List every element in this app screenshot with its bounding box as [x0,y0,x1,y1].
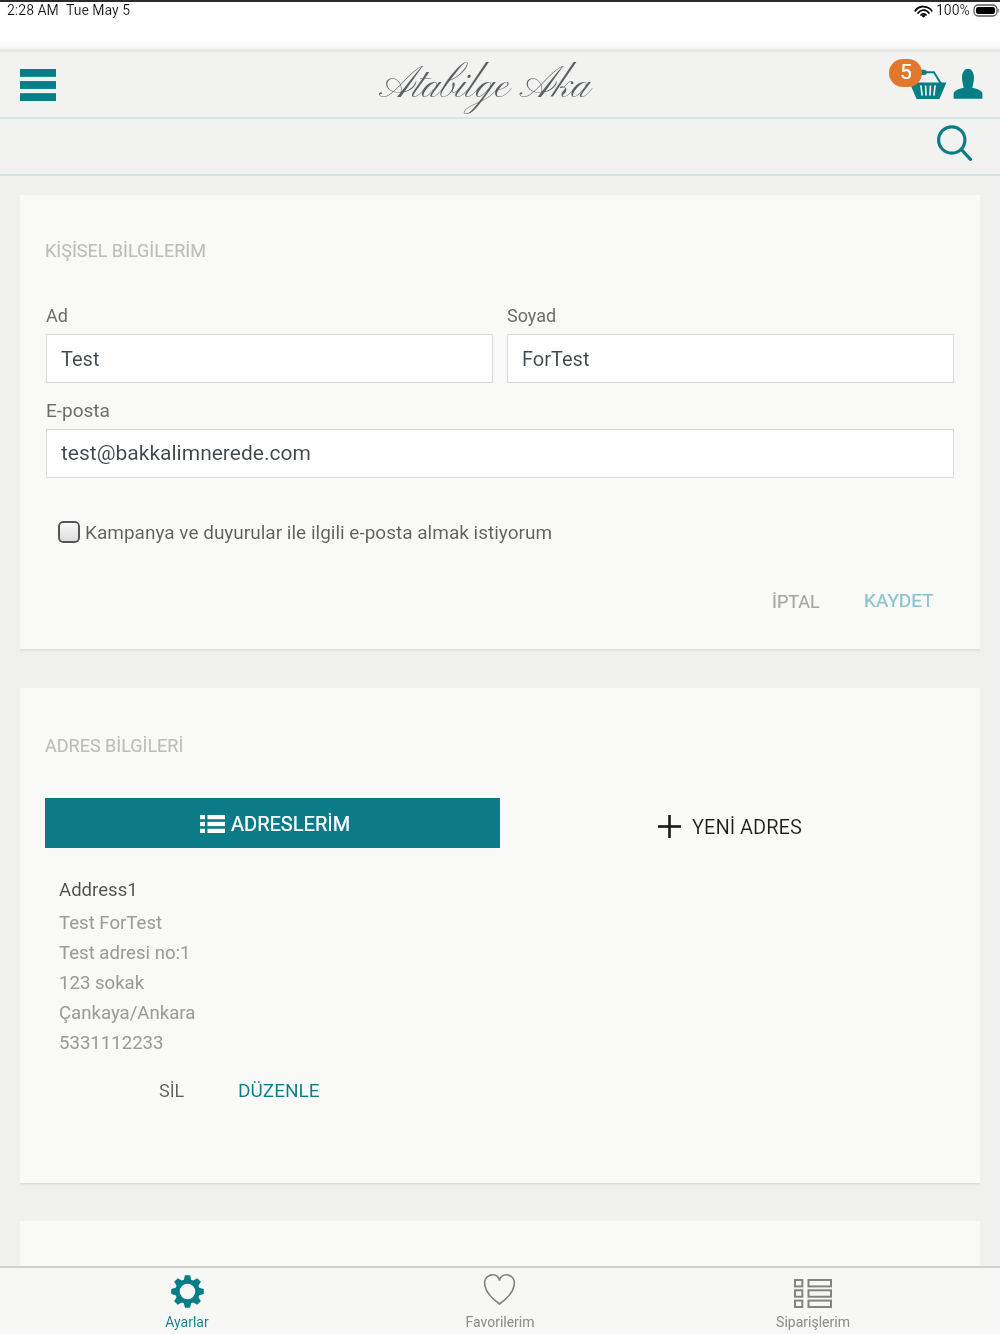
button[interactable]: Test [46,334,493,383]
staticText: 5331112233 [59,1032,164,1054]
staticText: 5 [900,60,912,85]
button[interactable]: SİL [146,1070,198,1111]
button[interactable]: Favorilerim [343,1268,656,1334]
staticText: E-posta [46,399,110,421]
staticText: ADRES BİLGİLERİ [45,735,184,756]
staticText: ForTest [522,347,590,370]
staticText: KAYDET [864,589,934,611]
staticText: DÜZENLE [238,1079,320,1101]
staticText: Test [61,347,100,370]
button[interactable]: KAYDET [851,579,947,621]
button[interactable]: Ayarlar [31,1268,343,1334]
staticText: test@bakkalimnerede.com [61,441,311,466]
button[interactable]: ADRESLERİM [45,798,500,848]
staticText: YENİ ADRES [692,815,802,838]
staticText: Kampanya ve duyurular ile ilgili e-posta… [85,521,553,543]
button[interactable]: Siparişlerim [656,1268,969,1334]
staticText: 2:28 AM [7,2,59,18]
staticText: 123 sokak [59,972,145,994]
staticText: Atabilge Aka [379,60,590,114]
button[interactable] [58,521,80,543]
staticText: KİŞİSEL BİLGİLERİM [45,240,206,261]
staticText: Favorilerim [465,1314,535,1330]
button[interactable]: Search [928,119,982,174]
staticText: İPTAL [772,591,820,612]
staticText: Ayarlar [165,1314,209,1330]
button[interactable]: test@bakkalimnerede.com [46,429,954,478]
staticText: Ad [46,305,68,326]
staticText: Siparişlerim [776,1314,850,1330]
staticText: SİL [159,1080,185,1101]
staticText: 100% [936,2,970,18]
staticText: Test adresi no:1 [59,942,191,964]
staticText: Soyad [507,305,557,326]
staticText: Çankaya/Ankara [59,1002,196,1024]
button[interactable]: Menu [8,57,68,113]
button[interactable]: Account [946,53,992,109]
staticText: Test ForTest [59,912,163,934]
button[interactable]: DÜZENLE [225,1069,333,1111]
staticText: Address1 [59,879,138,901]
button[interactable]: ForTest [507,334,954,383]
button[interactable]: YENİ ADRES [650,801,810,851]
button[interactable]: Shopping cart with 5 items [884,53,950,109]
staticText: Tue May 5 [66,2,131,18]
staticText: ADRESLERİM [231,812,351,835]
button[interactable]: İPTAL [759,581,833,622]
